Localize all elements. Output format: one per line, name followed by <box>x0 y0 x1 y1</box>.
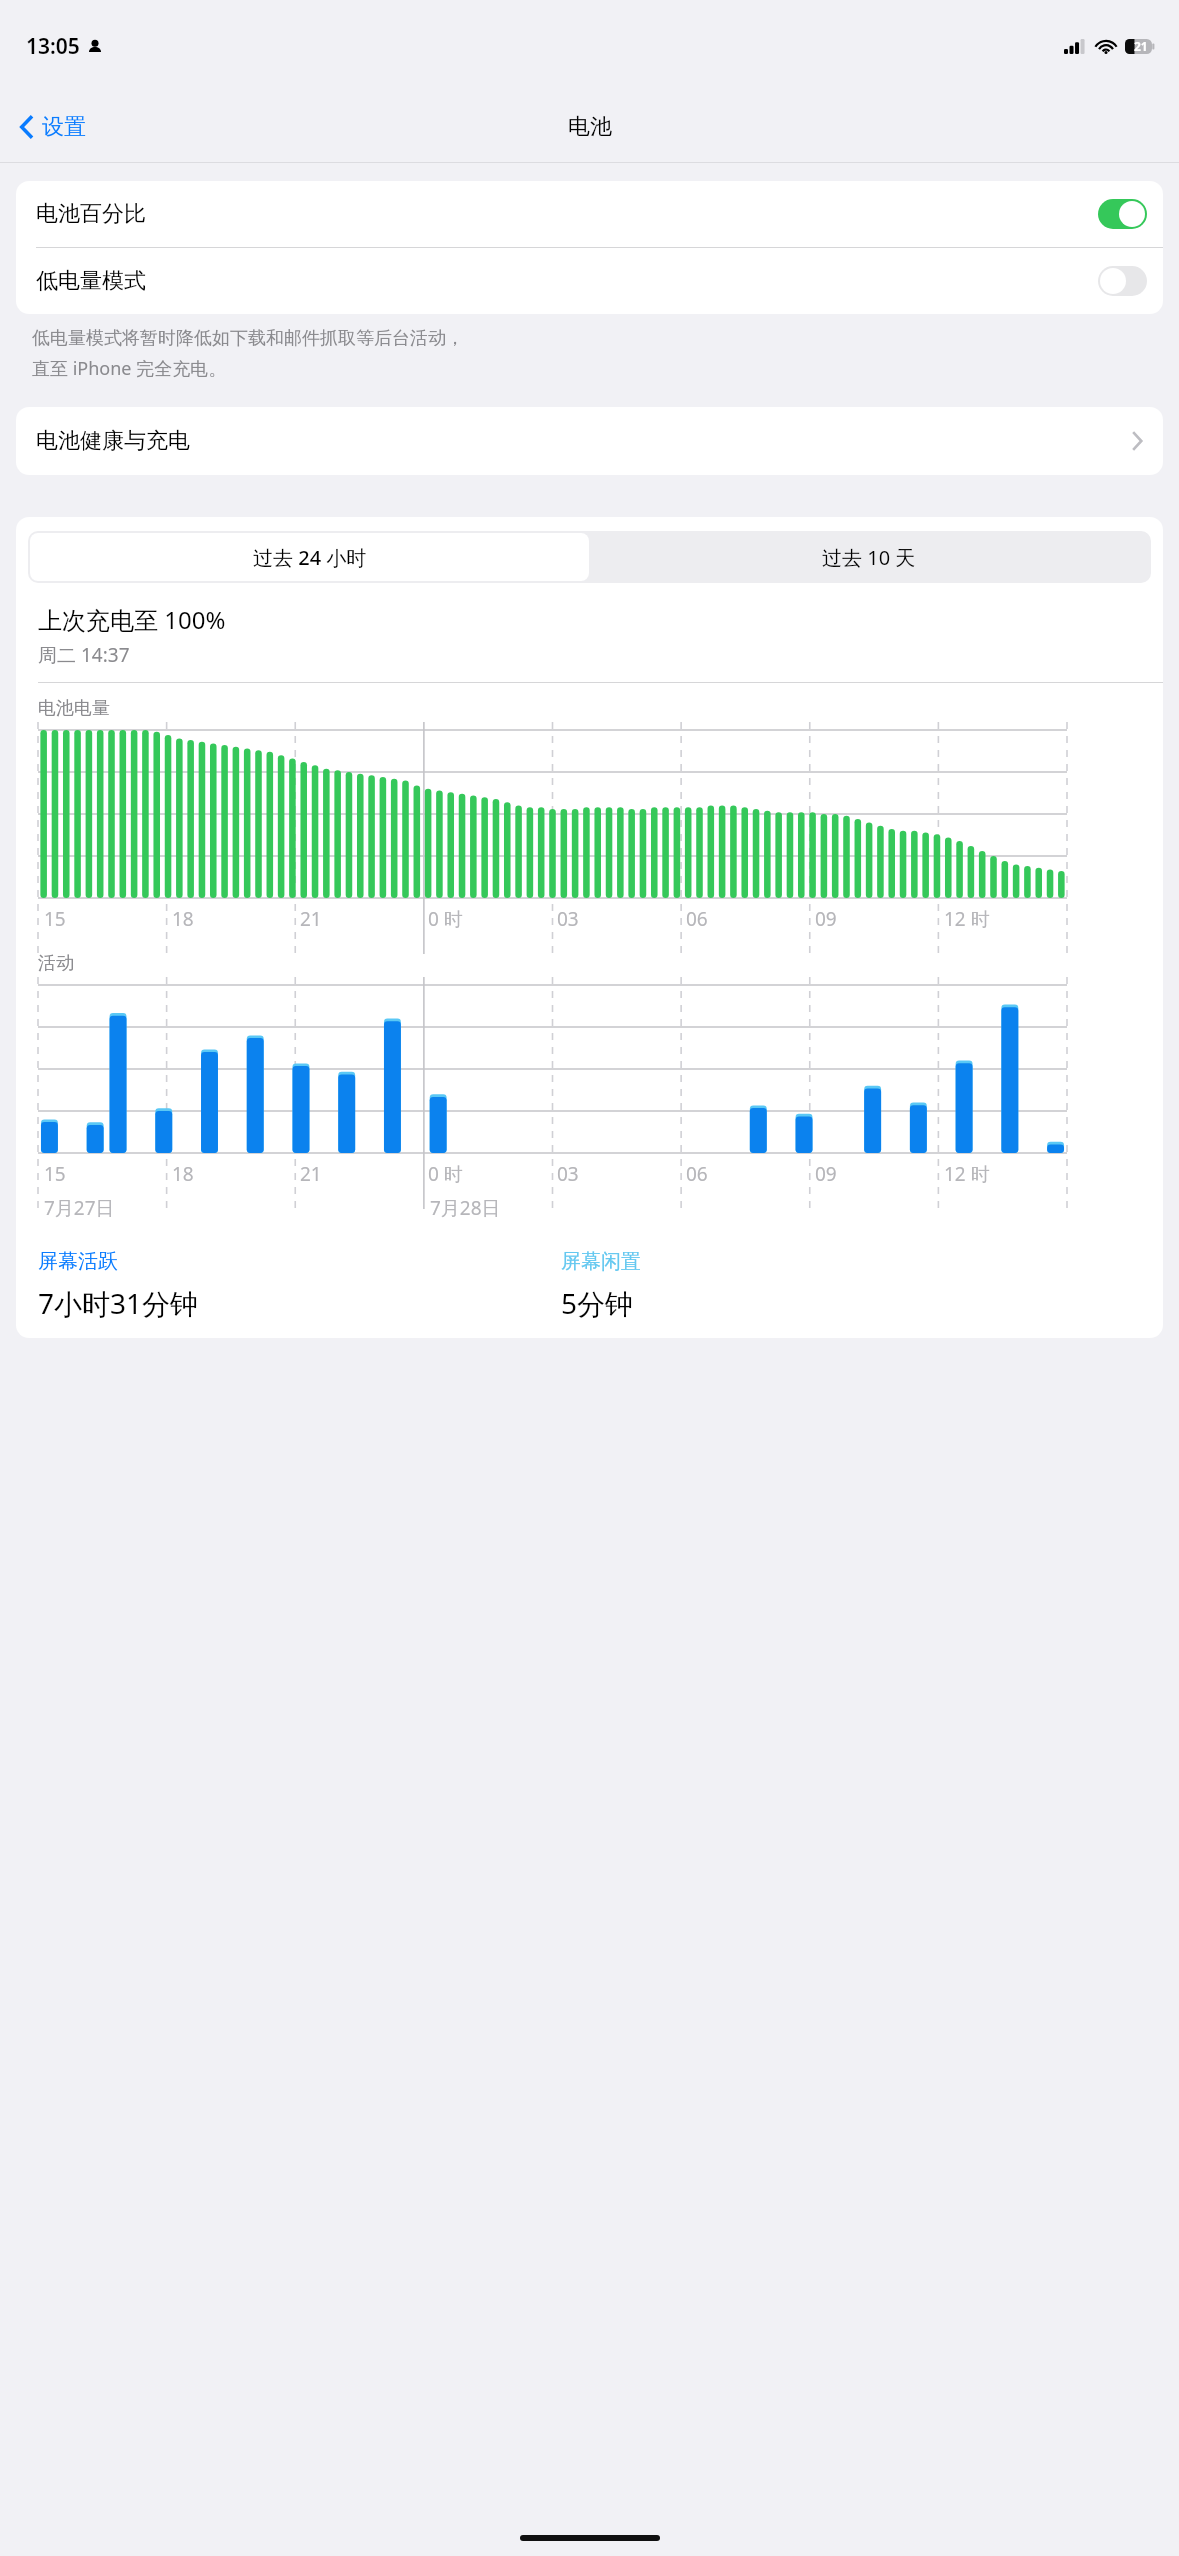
staticText: 7小时31分钟 <box>38 1284 199 1322</box>
staticText: 21 <box>300 906 322 932</box>
staticText: 7月28日 <box>430 1195 501 1221</box>
staticText: 周二 14:37 <box>38 642 130 668</box>
staticText: 21 <box>300 1161 322 1187</box>
staticText: 电池电量 <box>38 697 110 720</box>
staticText: 低电量模式将暂时降低如下载和邮件抓取等后台活动， <box>32 327 464 350</box>
button[interactable]: 低电量模式 <box>16 248 1163 314</box>
staticText: 13:05 <box>26 32 80 61</box>
staticText: 06 <box>686 1161 708 1187</box>
button[interactable]: 电池健康与充电 <box>16 407 1163 475</box>
staticText: 上次充电至 100% <box>38 603 226 636</box>
staticText: 03 <box>557 906 579 932</box>
staticText: 0 时 <box>428 906 463 932</box>
button[interactable]: 电池百分比 <box>16 181 1163 247</box>
staticText: 15 <box>44 906 66 932</box>
button[interactable]: Back to 设置 <box>12 105 94 149</box>
staticText: 活动 <box>38 952 74 975</box>
staticText: 18 <box>172 906 194 932</box>
staticText: 03 <box>557 1161 579 1187</box>
staticText: 09 <box>815 906 837 932</box>
staticText: 0 时 <box>428 1161 463 1187</box>
staticText: 低电量模式 <box>36 267 146 295</box>
staticText: 屏幕闲置 <box>561 1249 641 1274</box>
staticText: 过去 10 天 <box>822 544 916 571</box>
staticText: 06 <box>686 906 708 932</box>
staticText: 15 <box>44 1161 66 1187</box>
staticText: 21 <box>1134 38 1148 54</box>
staticText: 09 <box>815 1161 837 1187</box>
staticText: 电池 <box>568 113 612 141</box>
button[interactable]: Toggle off <box>1098 266 1147 296</box>
staticText: 12 时 <box>944 1161 990 1187</box>
staticText: 电池健康与充电 <box>36 427 190 455</box>
button[interactable]: Toggle on <box>1098 199 1147 229</box>
staticText: 屏幕活跃 <box>38 1249 118 1274</box>
staticText: 5分钟 <box>561 1284 634 1322</box>
staticText: 设置 <box>42 113 86 141</box>
staticText: 18 <box>172 1161 194 1187</box>
staticText: 过去 24 小时 <box>253 544 367 571</box>
staticText: 7月27日 <box>44 1195 115 1221</box>
staticText: 12 时 <box>944 906 990 932</box>
button[interactable]: 过去 24 小时 <box>30 533 589 581</box>
staticText: 电池百分比 <box>36 200 146 228</box>
button[interactable]: 过去 10 天 <box>589 533 1149 581</box>
staticText: 直至 iPhone 完全充电。 <box>32 356 227 381</box>
